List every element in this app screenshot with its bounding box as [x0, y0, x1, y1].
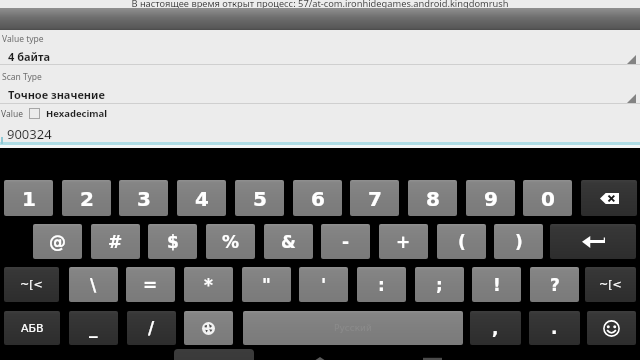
staticText: ~[< [20, 278, 43, 291]
button[interactable]: ~[< [585, 267, 636, 302]
button[interactable]: % [206, 224, 255, 259]
button[interactable]: : [357, 267, 406, 302]
button[interactable]: Hexadecimal checkbox [29, 108, 40, 119]
staticText: 900324 [7, 125, 52, 143]
staticText: ? [550, 275, 560, 295]
button[interactable]: ; [415, 267, 464, 302]
button[interactable]: ! [472, 267, 521, 302]
staticText: 4 [195, 187, 209, 210]
staticText: 9 [484, 187, 498, 210]
button[interactable]: 7 [350, 180, 399, 216]
staticText: Русский [334, 323, 372, 333]
staticText: $ [167, 232, 179, 252]
staticText: 6 [311, 187, 325, 210]
button[interactable]: / [127, 311, 176, 345]
staticText: 7 [368, 187, 382, 210]
staticText: 0 [541, 187, 555, 210]
button[interactable]: = [126, 267, 175, 302]
staticText: 4 байта [8, 49, 51, 64]
button[interactable]: , [470, 311, 521, 345]
staticText: * [204, 275, 213, 295]
button[interactable]: Emoji [587, 311, 636, 345]
staticText: Value type [2, 33, 44, 45]
button[interactable]: 8 [408, 180, 457, 216]
button[interactable]: " [242, 267, 291, 302]
staticText: ) [515, 232, 523, 252]
button[interactable]: 4 [177, 180, 226, 216]
button[interactable]: 2 [62, 180, 111, 216]
button[interactable]: 3 [119, 180, 168, 216]
button[interactable]: \ [69, 267, 118, 302]
staticText: - [342, 232, 350, 252]
button[interactable]: @ [33, 224, 82, 259]
staticText: ( [458, 232, 466, 252]
button[interactable]: 1 [4, 180, 53, 216]
staticText: = [143, 275, 158, 295]
staticText: В настоящее время открыт процесс: 57/at-… [0, 0, 640, 10]
button[interactable]: ' [299, 267, 348, 302]
button[interactable]: - [321, 224, 370, 259]
button[interactable]: 0 [523, 180, 572, 216]
button[interactable]: * [184, 267, 233, 302]
staticText: 1 [22, 187, 36, 210]
staticText: " [262, 275, 271, 295]
staticText: ; [436, 275, 443, 295]
button[interactable]: АБВ [4, 311, 60, 345]
button[interactable]: # [91, 224, 140, 259]
button[interactable]: Enter [550, 224, 636, 259]
staticText: . [551, 318, 558, 338]
staticText: 3 [137, 187, 151, 210]
staticText: & [281, 232, 296, 252]
staticText: Value [1, 108, 23, 120]
staticText: ! [493, 275, 501, 295]
button[interactable]: 6 [293, 180, 342, 216]
staticText: # [108, 232, 123, 252]
staticText: АБВ [21, 322, 44, 335]
staticText: : [378, 275, 385, 295]
staticText: 2 [80, 187, 94, 210]
button[interactable]: $ [148, 224, 197, 259]
button[interactable]: . [529, 311, 580, 345]
staticText: Hexadecimal [46, 107, 108, 120]
button[interactable]: & [264, 224, 313, 259]
button[interactable]: ) [494, 224, 543, 259]
button[interactable]: ? [530, 267, 579, 302]
button[interactable]: _ [69, 311, 118, 345]
staticText: % [222, 232, 240, 252]
staticText: 8 [426, 187, 440, 210]
button[interactable]: Switch keyboard language [184, 311, 233, 345]
staticText: ~[< [599, 278, 622, 291]
button[interactable]: ( [437, 224, 486, 259]
staticText: ' [321, 275, 327, 295]
staticText: _ [89, 318, 98, 338]
button[interactable]: 5 [235, 180, 284, 216]
staticText: / [148, 318, 155, 338]
staticText: \ [90, 275, 97, 295]
staticText: @ [49, 232, 66, 252]
staticText: Scan Type [2, 71, 42, 83]
button[interactable]: Backspace [581, 180, 637, 216]
staticText: + [396, 232, 411, 252]
button[interactable]: 9 [466, 180, 515, 216]
button[interactable]: ~[< [4, 267, 59, 302]
staticText: 5 [253, 187, 267, 210]
staticText: Точное значение [8, 87, 105, 102]
staticText: , [492, 318, 499, 338]
button[interactable]: Русский [243, 311, 463, 345]
button[interactable]: + [379, 224, 428, 259]
